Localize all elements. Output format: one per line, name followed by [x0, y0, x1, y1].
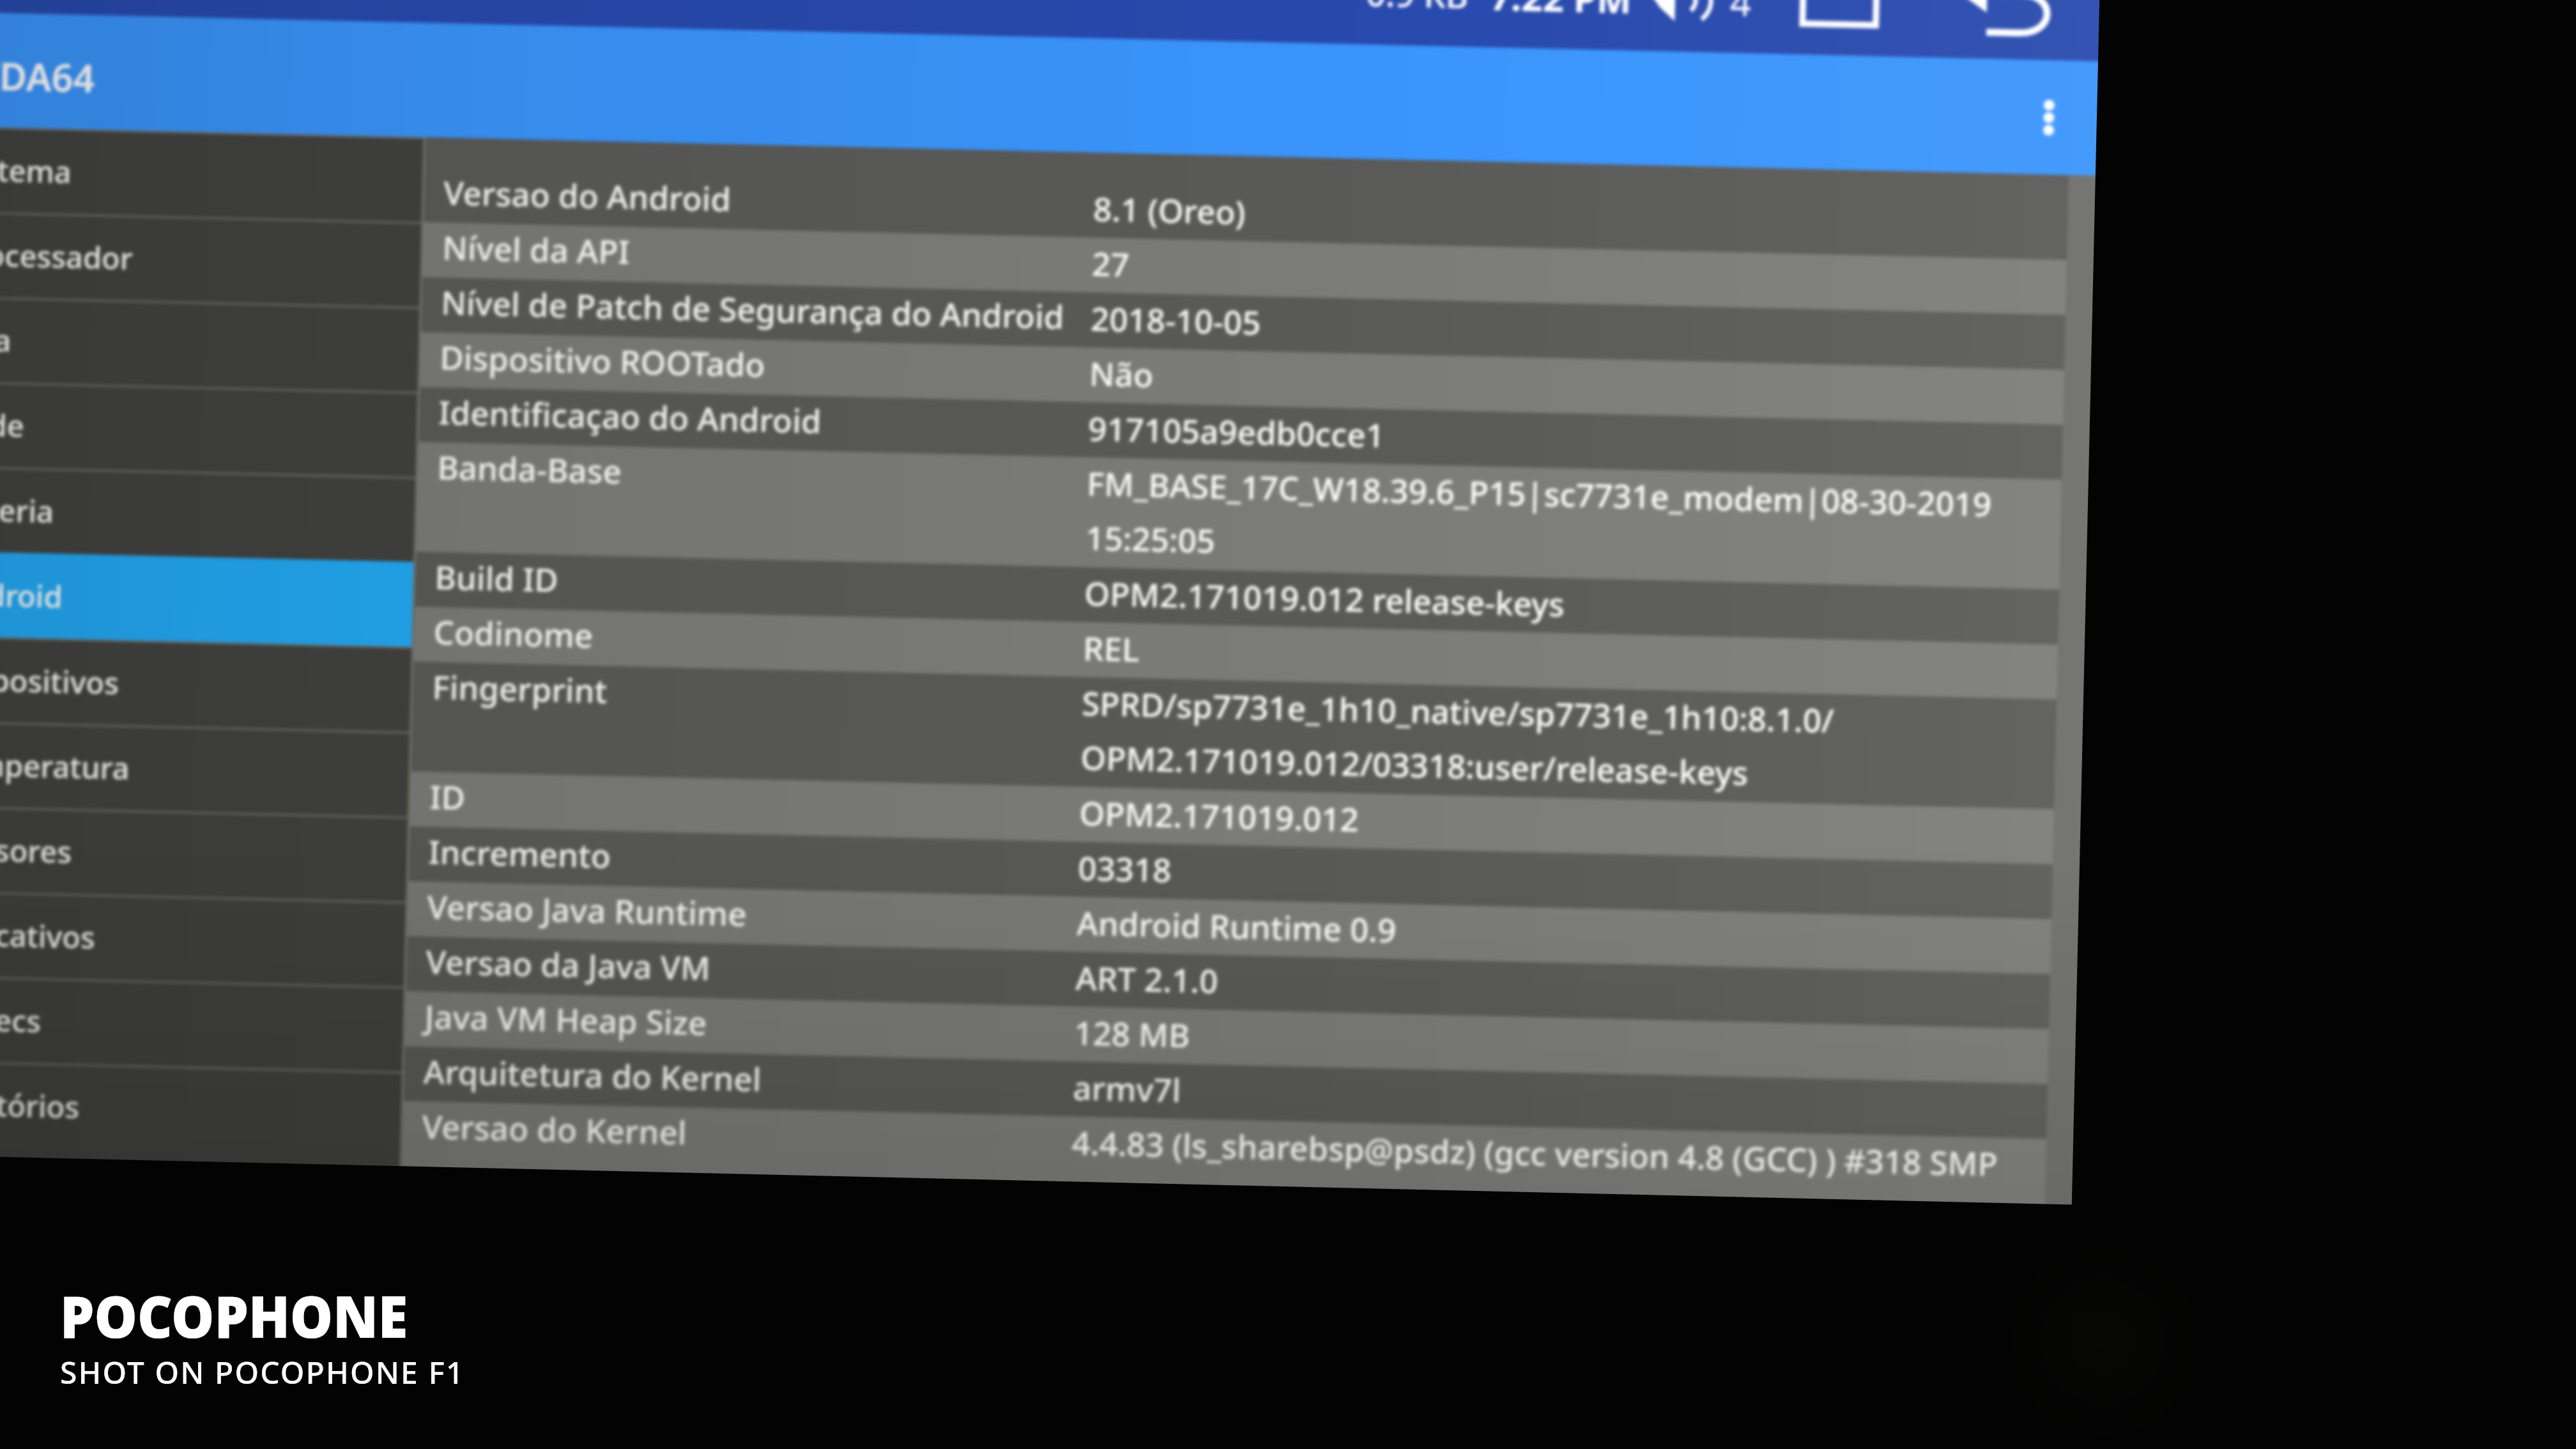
- staticText: Sistema: [0, 149, 72, 192]
- button[interactable]: More options: [2000, 69, 2098, 167]
- staticText: OPM2.171019.012 release-keys: [1084, 570, 1565, 625]
- staticText: ID: [429, 774, 466, 819]
- button[interactable]: Android: [0, 550, 413, 647]
- staticText: AIDA64: [0, 49, 96, 103]
- button[interactable]: Aplicativos: [0, 889, 406, 987]
- button[interactable]: Versao Java Runtime: [407, 881, 2051, 974]
- button[interactable]: Diretórios: [0, 1059, 402, 1156]
- staticText: Rede: [0, 404, 25, 446]
- staticText: 27: [1092, 241, 1130, 286]
- button[interactable]: Banda-Base: [416, 442, 2062, 590]
- staticText: Banda-Base: [437, 444, 623, 492]
- staticText: 03318: [1078, 845, 1172, 891]
- button[interactable]: Dispositivos: [0, 635, 412, 732]
- button[interactable]: Incremento: [409, 826, 2053, 919]
- staticText: Versao Java Runtime: [427, 884, 747, 935]
- staticText: Dispositivos: [0, 658, 120, 703]
- staticText: Java VM Heap Size: [424, 993, 708, 1044]
- staticText: SHOT ON POCOPHONE F1: [60, 1351, 465, 1393]
- button[interactable]: Build ID: [415, 552, 2059, 644]
- staticText: Fingerprint: [432, 664, 608, 712]
- staticText: Não: [1089, 351, 1154, 396]
- staticText: Processador: [0, 234, 133, 279]
- staticText: Arquitetura do Kernel: [423, 1048, 762, 1100]
- staticText: REL: [1083, 625, 1140, 671]
- button[interactable]: ID: [410, 771, 2054, 864]
- staticText: Bateria: [0, 489, 55, 532]
- staticText: Sensores: [0, 828, 72, 872]
- staticText: OPM2.171019.012: [1079, 790, 1360, 841]
- staticText: 0.9 KB: [1365, 0, 1469, 19]
- staticText: Temperatura: [0, 743, 130, 789]
- staticText: armv7l: [1073, 1065, 1181, 1111]
- button[interactable]: Versao do Kernel: [402, 1101, 2046, 1204]
- staticText: FM_BASE_17C_W18.39.6_P15|sc7731e_modem|0…: [1085, 460, 1993, 580]
- staticText: Identificaçao do Android: [438, 389, 822, 442]
- staticText: 4.4.83 (ls_sharebsp@psdz) (gcc version 4…: [1071, 1120, 1998, 1203]
- staticText: Dispositivo ROOTado: [439, 334, 766, 386]
- button[interactable]: Bateria: [0, 465, 415, 562]
- staticText: Codecs: [0, 998, 42, 1042]
- button[interactable]: Temperatura: [0, 720, 410, 817]
- button[interactable]: Nível de Patch de Segurança do Android: [421, 277, 2065, 370]
- staticText: Codinome: [433, 609, 594, 657]
- staticText: 7:22 PM: [1489, 0, 1632, 24]
- staticText: Diretórios: [0, 1083, 80, 1127]
- button[interactable]: Sistema: [0, 125, 423, 222]
- staticText: 917105a9edb0cce1: [1088, 406, 1385, 456]
- button[interactable]: Codinome: [414, 607, 2058, 699]
- staticText: SPRD/sp7731e_1h10_native/sp7731e_1h10:8.…: [1080, 680, 1835, 797]
- button[interactable]: Java VM Heap Size: [405, 991, 2049, 1084]
- staticText: Android Runtime 0.9: [1076, 900, 1397, 951]
- button[interactable]: Versao da Java VM: [406, 936, 2050, 1029]
- staticText: POCOPHONE: [60, 1276, 408, 1355]
- button[interactable]: Processador: [0, 210, 421, 307]
- button[interactable]: Tela: [0, 295, 419, 392]
- staticText: Versao do Android: [443, 170, 732, 220]
- button[interactable]: Sensores: [0, 804, 408, 902]
- staticText: 4: [1730, 0, 1752, 27]
- staticText: Nível de Patch de Segurança do Android: [441, 279, 1065, 338]
- staticText: Android: [0, 574, 63, 617]
- staticText: Incremento: [428, 829, 612, 877]
- button[interactable]: Codecs: [0, 974, 404, 1072]
- staticText: 8.1 (Oreo): [1093, 186, 1246, 233]
- button[interactable]: Arquitetura do Kernel: [404, 1046, 2048, 1139]
- button[interactable]: Versao do Android: [424, 167, 2068, 260]
- button[interactable]: Fingerprint: [411, 662, 2057, 809]
- staticText: 2018-10-05: [1090, 296, 1262, 344]
- staticText: Versao do Kernel: [422, 1103, 687, 1154]
- staticText: ART 2.1.0: [1075, 955, 1218, 1002]
- staticText: Tela: [0, 319, 12, 361]
- staticText: Nível da API: [442, 224, 631, 273]
- button[interactable]: Nível da API: [423, 222, 2067, 315]
- staticText: Build ID: [434, 554, 559, 601]
- button[interactable]: Dispositivo ROOTado: [420, 332, 2064, 425]
- button[interactable]: Identificaçao do Android: [419, 387, 2063, 480]
- button[interactable]: Rede: [0, 380, 417, 477]
- staticText: Versao da Java VM: [426, 939, 711, 989]
- staticText: 128 MB: [1074, 1010, 1190, 1056]
- staticText: Aplicativos: [0, 913, 96, 958]
